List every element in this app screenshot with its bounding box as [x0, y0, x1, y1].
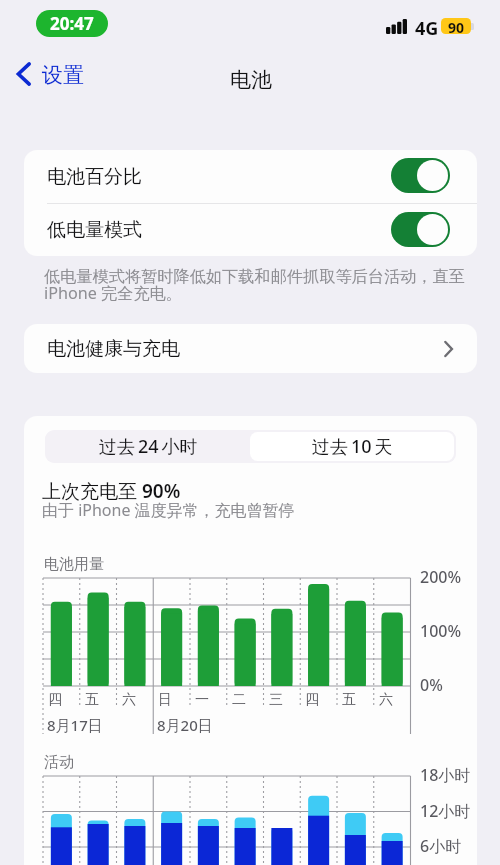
button[interactable]: 过去 24 小时: [47, 432, 250, 461]
button[interactable]: 电池健康与充电: [24, 324, 477, 373]
staticText: 电池用量: [44, 555, 104, 574]
staticText: 低电量模式: [47, 218, 142, 242]
staticText: 六: [379, 691, 393, 709]
staticText: 由于 iPhone 温度异常，充电曾暂停: [42, 499, 295, 521]
staticText: 8月20日: [157, 715, 213, 735]
staticText: 设置: [42, 62, 84, 88]
staticText: 电池: [230, 67, 272, 93]
staticText: 低电量模式将暂时降低如下载和邮件抓取等后台活动，直至 iPhone 完全充电。: [44, 265, 470, 303]
staticText: 二: [232, 691, 246, 709]
staticText: 五: [342, 691, 356, 709]
staticText: 五: [85, 691, 99, 709]
staticText: 90: [448, 18, 465, 34]
button[interactable]: 过去 10 天: [250, 432, 454, 461]
staticText: 过去 24 小时: [99, 434, 198, 459]
staticText: 电池百分比: [47, 165, 142, 189]
staticText: 上次充电至 90%: [42, 478, 181, 504]
staticText: 四: [305, 691, 319, 709]
staticText: 100%: [420, 620, 462, 642]
staticText: 0%: [420, 674, 443, 696]
staticText: 8月17日: [47, 715, 103, 735]
staticText: 活动: [44, 753, 74, 772]
staticText: 20:47: [50, 12, 94, 35]
staticText: 三: [269, 691, 283, 709]
staticText: 12小时: [420, 800, 471, 822]
staticText: 4G: [415, 16, 439, 41]
staticText: 日: [158, 691, 172, 709]
staticText: 6小时: [420, 835, 462, 857]
staticText: 电池健康与充电: [47, 337, 180, 361]
staticText: 过去 10 天: [312, 434, 393, 459]
staticText: 四: [48, 691, 62, 709]
staticText: 六: [122, 691, 136, 709]
button[interactable]: 设置: [10, 55, 92, 93]
button[interactable]: 低电量模式: [24, 204, 477, 256]
button[interactable]: 电池百分比: [24, 150, 477, 203]
staticText: 18小时: [420, 764, 471, 786]
staticText: 一: [195, 691, 209, 709]
staticText: 200%: [420, 566, 462, 588]
